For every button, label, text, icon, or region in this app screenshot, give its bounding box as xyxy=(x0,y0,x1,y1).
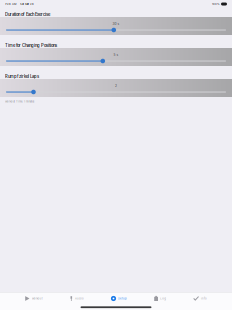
button[interactable]: Setup xyxy=(109,292,129,304)
staticText: Duration of Each Exercise xyxy=(5,12,50,17)
button[interactable]: Audio xyxy=(68,292,86,304)
staticText: Workout xyxy=(32,297,43,300)
staticText: 100% xyxy=(212,2,220,6)
staticText: Setup xyxy=(118,297,127,300)
staticText: 7:28 AM xyxy=(5,2,16,6)
staticText: 30 s xyxy=(112,22,119,26)
staticText: Info xyxy=(201,297,207,300)
button[interactable]: Info xyxy=(191,292,209,304)
staticText: 5 s xyxy=(113,53,118,57)
staticText: Audio xyxy=(75,297,84,300)
button[interactable]: Log xyxy=(152,292,168,304)
staticText: Time for Changing Positions xyxy=(5,43,57,48)
staticText: Log xyxy=(160,297,166,300)
staticText: Rumpfzirkel Laps xyxy=(5,74,39,79)
staticText: Workout Time: 1 minutes xyxy=(5,100,34,103)
staticText: 2 xyxy=(115,84,117,88)
button[interactable]: Workout xyxy=(23,292,45,304)
staticText: Sat Mar 28 xyxy=(20,2,34,6)
